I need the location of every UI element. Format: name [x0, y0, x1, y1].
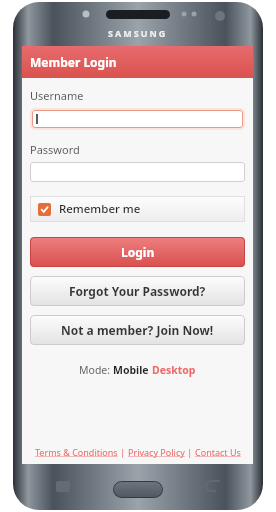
staticText: Privacy Policy [128, 446, 185, 458]
staticText: | [185, 446, 195, 458]
button[interactable]: Desktop [152, 363, 196, 377]
staticText: Login [121, 244, 155, 260]
staticText: Terms & Conditions [35, 446, 118, 458]
button[interactable]: Terms & Conditions [35, 446, 118, 458]
staticText: Desktop [152, 363, 196, 377]
staticText: Mobile [113, 363, 152, 377]
staticText: Forgot Your Password? [69, 283, 206, 299]
staticText: Username [30, 88, 84, 103]
staticText: Not a member? Join Now! [61, 322, 214, 338]
button[interactable]: Privacy Policy [128, 446, 185, 458]
button[interactable] [30, 162, 245, 182]
button[interactable]: Not a member? Join Now! [30, 315, 245, 345]
staticText: Contact Us [195, 446, 241, 458]
button[interactable]: Contact Us [195, 446, 241, 458]
staticText: Remember me [59, 201, 141, 217]
button[interactable]: Forgot Your Password? [30, 276, 245, 306]
staticText: SAMSUNG [108, 27, 168, 39]
staticText: Member Login [30, 54, 117, 70]
button[interactable]: Home [113, 481, 163, 498]
staticText: Mode: [79, 363, 113, 377]
button[interactable]: Remember me [30, 196, 245, 222]
staticText: Password [30, 142, 80, 157]
staticText: | [118, 446, 128, 458]
button[interactable]: Login [30, 237, 245, 267]
button[interactable] [32, 110, 243, 128]
